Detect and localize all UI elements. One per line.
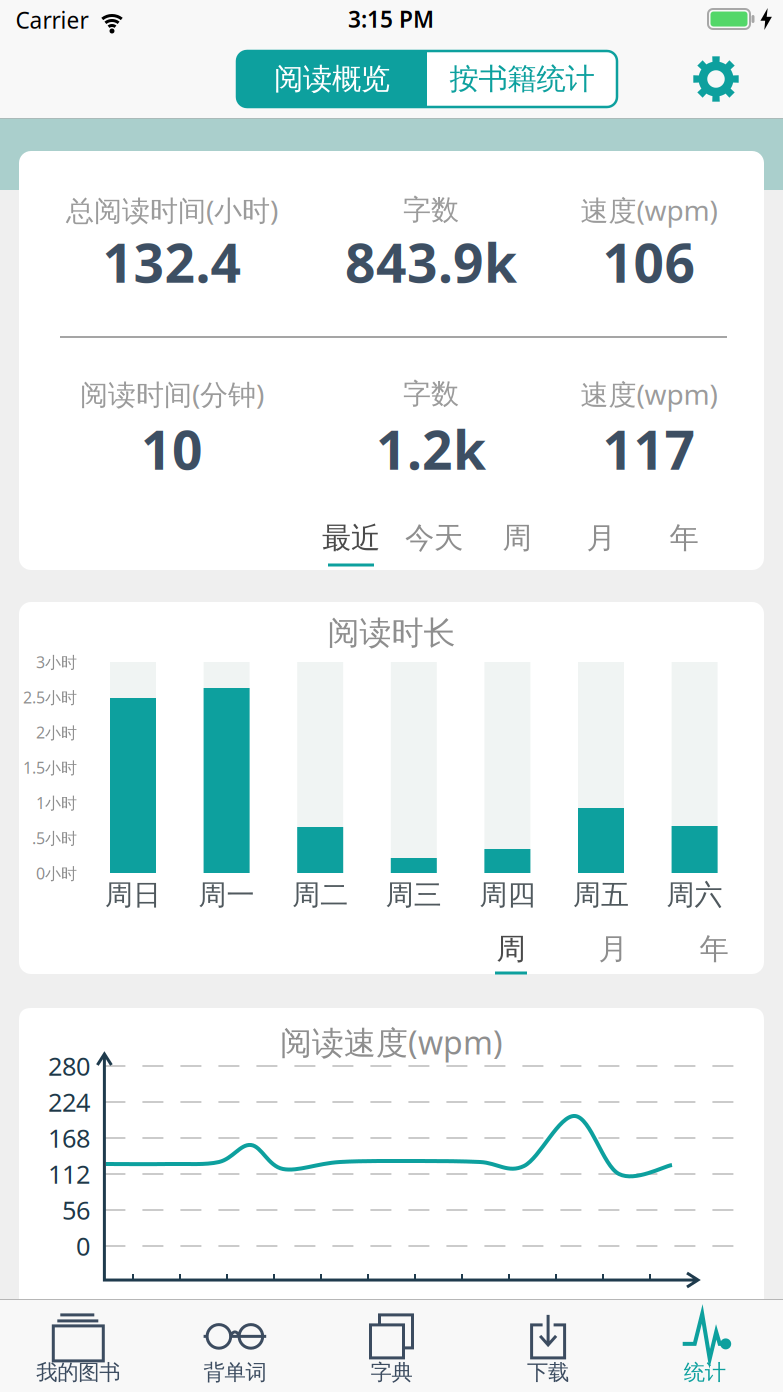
staticText: 132.4 <box>102 227 241 297</box>
staticText: 我的图书 <box>36 1359 120 1386</box>
staticText: 字典 <box>370 1359 412 1386</box>
button[interactable]: 年 <box>644 516 724 560</box>
staticText: 106 <box>602 227 695 297</box>
staticText: 周 <box>502 520 531 556</box>
button[interactable]: Settings <box>689 52 743 106</box>
staticText: 周四 <box>479 878 535 912</box>
staticText: 2小时 <box>36 722 77 743</box>
staticText: 阅读时长 <box>327 613 455 653</box>
button[interactable]: 最近 <box>311 516 391 560</box>
button[interactable]: 背单词 <box>157 1299 313 1392</box>
button[interactable]: 字典 <box>313 1299 470 1392</box>
button[interactable]: 下载 <box>470 1299 626 1392</box>
staticText: 56 <box>62 1193 90 1227</box>
staticText: 按书籍统计 <box>449 61 594 97</box>
button[interactable]: 周 <box>471 927 551 971</box>
staticText: 速度(wpm) <box>580 191 717 229</box>
staticText: 背单词 <box>203 1359 266 1386</box>
staticText: 总阅读时间(小时) <box>66 191 278 229</box>
staticText: 周一 <box>199 878 255 912</box>
staticText: 0 <box>76 1229 90 1263</box>
staticText: Carrier <box>15 5 88 35</box>
staticText: 今天 <box>405 520 463 556</box>
staticText: 117 <box>602 414 695 484</box>
staticText: 周二 <box>292 878 348 912</box>
button[interactable]: 月 <box>573 927 653 971</box>
staticText: 224 <box>48 1085 90 1119</box>
staticText: 1.5小时 <box>23 757 77 778</box>
staticText: 阅读概览 <box>274 61 390 97</box>
staticText: 3小时 <box>36 651 77 673</box>
staticText: 周五 <box>573 878 629 912</box>
staticText: 月 <box>586 520 615 556</box>
staticText: 周六 <box>667 878 723 912</box>
staticText: 3:15 PM <box>348 4 434 34</box>
button[interactable]: 月 <box>561 516 641 560</box>
staticText: 周三 <box>386 878 442 912</box>
staticText: 周日 <box>105 878 161 912</box>
staticText: 280 <box>48 1049 90 1083</box>
staticText: 统计 <box>684 1359 726 1386</box>
button[interactable]: 周 <box>477 516 557 560</box>
button[interactable]: 年 <box>674 927 754 971</box>
button[interactable]: 今天 <box>394 516 474 560</box>
staticText: 0小时 <box>36 863 77 884</box>
staticText: 字数 <box>403 193 459 227</box>
button[interactable]: 阅读概览 <box>237 51 427 107</box>
button[interactable]: 按书籍统计 <box>427 51 617 107</box>
staticText: 阅读速度(wpm) <box>280 1021 503 1063</box>
staticText: 下载 <box>527 1359 569 1386</box>
staticText: 112 <box>48 1157 90 1191</box>
staticText: 阅读时间(分钟) <box>80 375 264 413</box>
staticText: 月 <box>598 931 627 967</box>
staticText: 最近 <box>322 520 380 556</box>
staticText: 年 <box>699 931 728 967</box>
staticText: 843.9k <box>345 227 517 297</box>
staticText: 168 <box>48 1121 90 1155</box>
staticText: 1小时 <box>36 792 77 813</box>
staticText: 10 <box>141 414 203 484</box>
staticText: 年 <box>669 520 698 556</box>
staticText: .5小时 <box>32 827 77 849</box>
staticText: 周 <box>496 931 525 967</box>
staticText: 速度(wpm) <box>580 375 717 413</box>
staticText: 1.2k <box>376 414 486 484</box>
button[interactable]: 统计 <box>626 1299 783 1392</box>
staticText: 2.5小时 <box>23 687 77 708</box>
button[interactable]: 我的图书 <box>0 1299 157 1392</box>
staticText: 字数 <box>403 377 459 411</box>
